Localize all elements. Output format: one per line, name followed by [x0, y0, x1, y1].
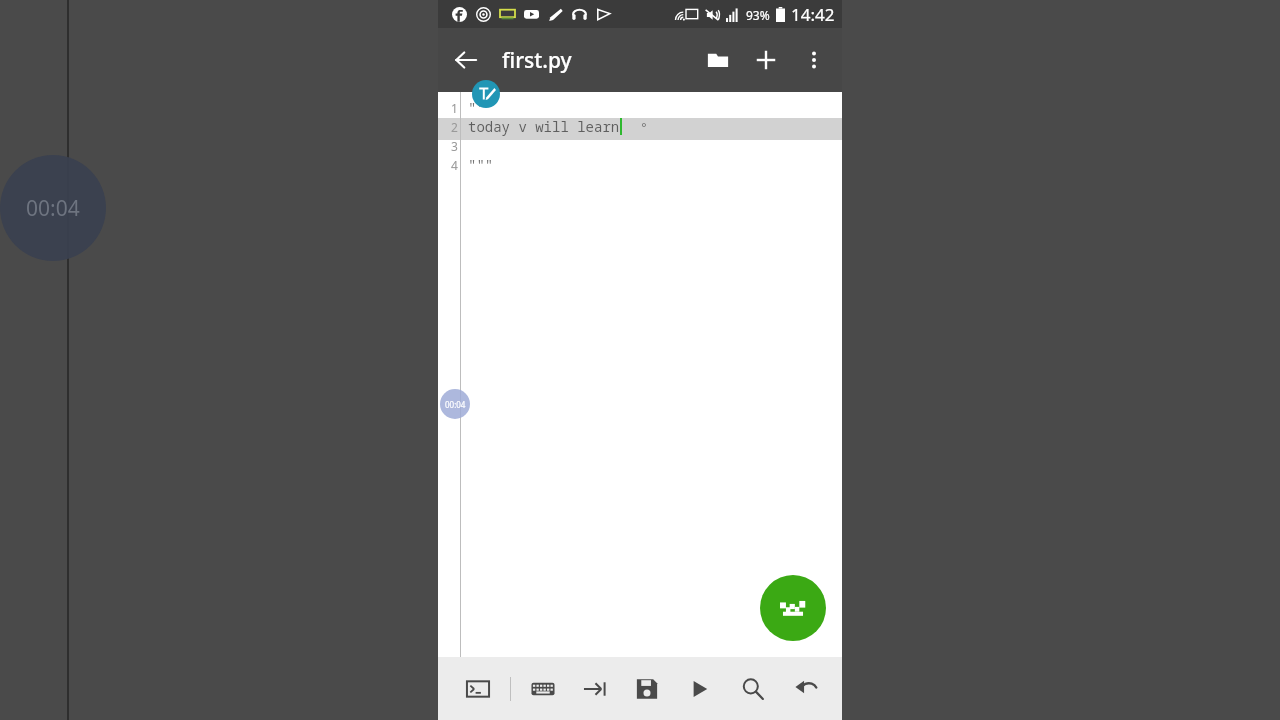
staticText: 4: [451, 157, 458, 173]
staticText: first.py: [502, 46, 572, 75]
staticText: 00:04: [26, 194, 80, 223]
staticText: 00:04: [445, 399, 466, 410]
button[interactable]: New file: [742, 36, 790, 84]
staticText: 93%: [746, 7, 770, 23]
staticText: """: [468, 98, 494, 117]
button[interactable]: Run script: [760, 575, 826, 641]
button[interactable]: More options: [790, 36, 838, 84]
staticText: 14:42: [791, 3, 835, 26]
staticText: """: [468, 155, 494, 174]
button[interactable]: Text editor badge: [472, 80, 500, 108]
button[interactable]: Run: [678, 667, 722, 711]
button[interactable]: Back: [442, 36, 490, 84]
staticText: 2: [451, 119, 458, 135]
button[interactable]: Keyboard: [521, 667, 565, 711]
staticText: today v will learn: [468, 117, 620, 136]
button[interactable]: Indent: [573, 667, 617, 711]
button[interactable]: Open folder: [694, 36, 742, 84]
button[interactable]: Search: [731, 667, 775, 711]
button[interactable]: Save: [625, 667, 669, 711]
button[interactable]: Undo: [784, 667, 828, 711]
staticText: 1: [451, 100, 458, 116]
button[interactable]: Terminal: [456, 667, 500, 711]
staticText: °: [640, 118, 648, 136]
staticText: 3: [451, 138, 458, 154]
